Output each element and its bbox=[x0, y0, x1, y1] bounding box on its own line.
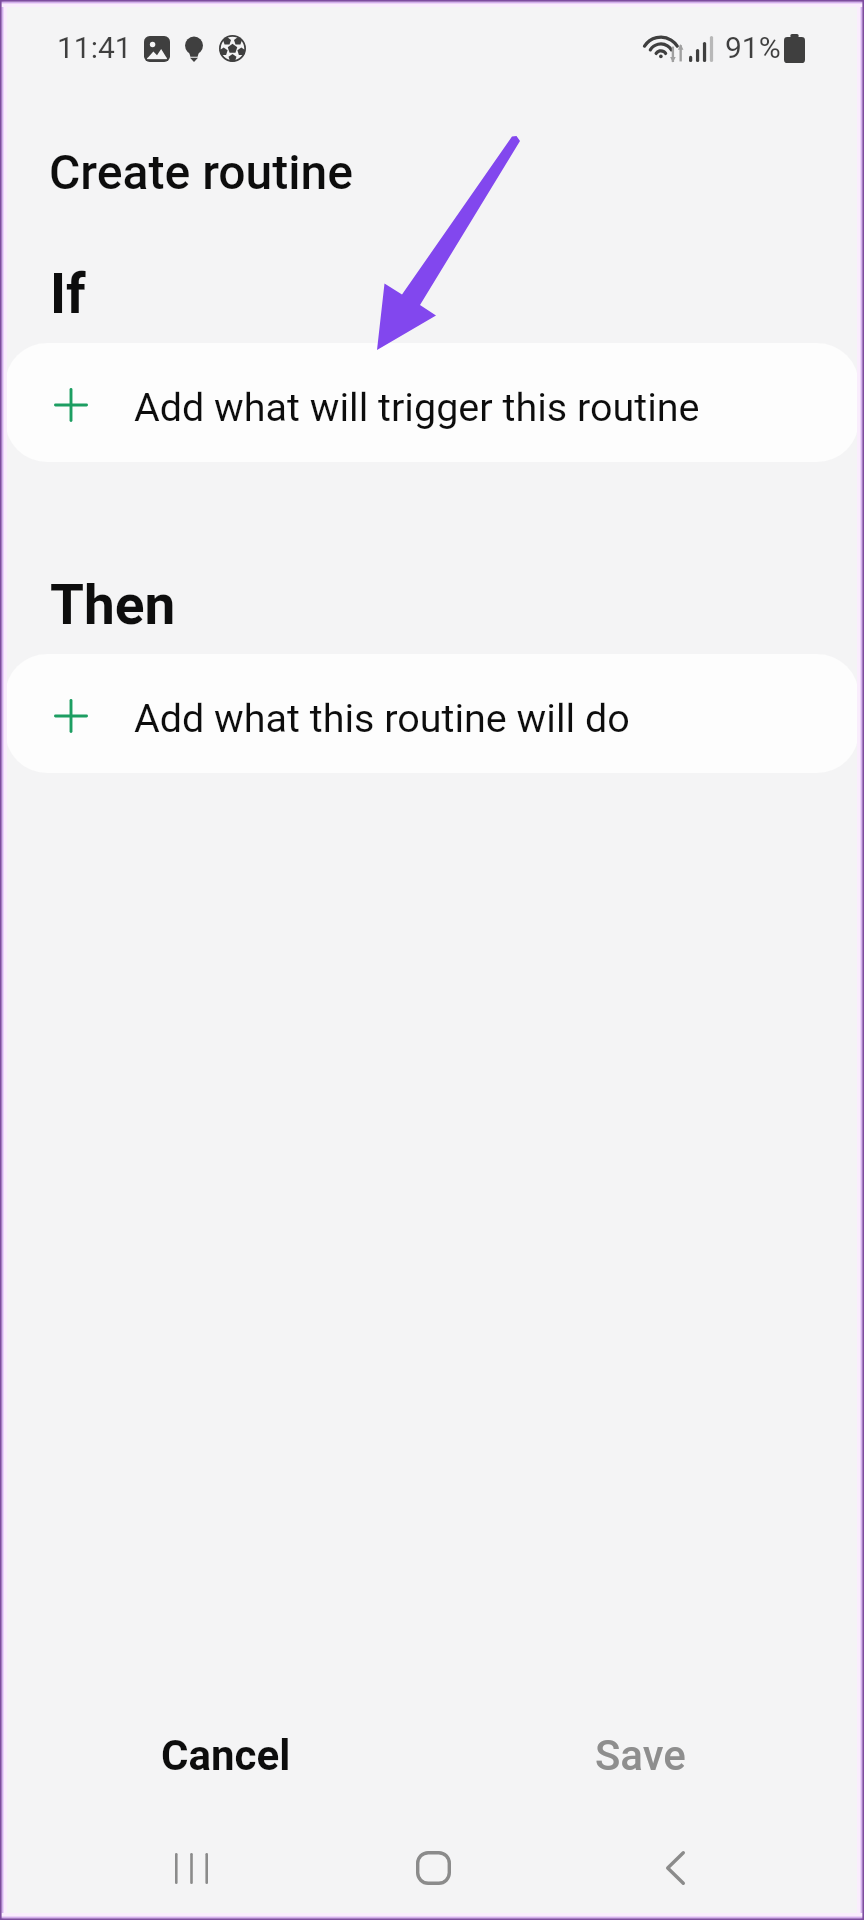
button[interactable]: Save bbox=[442, 1715, 838, 1795]
staticText: If bbox=[50, 262, 86, 326]
staticText: Add what this routine will do bbox=[134, 695, 630, 741]
button[interactable]: Recent apps bbox=[131, 1818, 251, 1918]
button[interactable]: Cancel bbox=[28, 1715, 424, 1795]
staticText: 91% bbox=[725, 30, 781, 65]
staticText: Create routine bbox=[49, 144, 353, 200]
button[interactable]: Add what this routine will do bbox=[5, 654, 859, 773]
staticText: Save bbox=[595, 1731, 686, 1780]
button[interactable]: Add what will trigger this routine bbox=[5, 343, 859, 462]
staticText: Cancel bbox=[161, 1731, 291, 1780]
staticText: Add what will trigger this routine bbox=[134, 384, 700, 430]
button[interactable]: Home bbox=[373, 1818, 493, 1918]
staticText: Then bbox=[50, 573, 176, 637]
staticText: 11:41 bbox=[57, 30, 132, 65]
button[interactable]: Back bbox=[615, 1818, 735, 1918]
